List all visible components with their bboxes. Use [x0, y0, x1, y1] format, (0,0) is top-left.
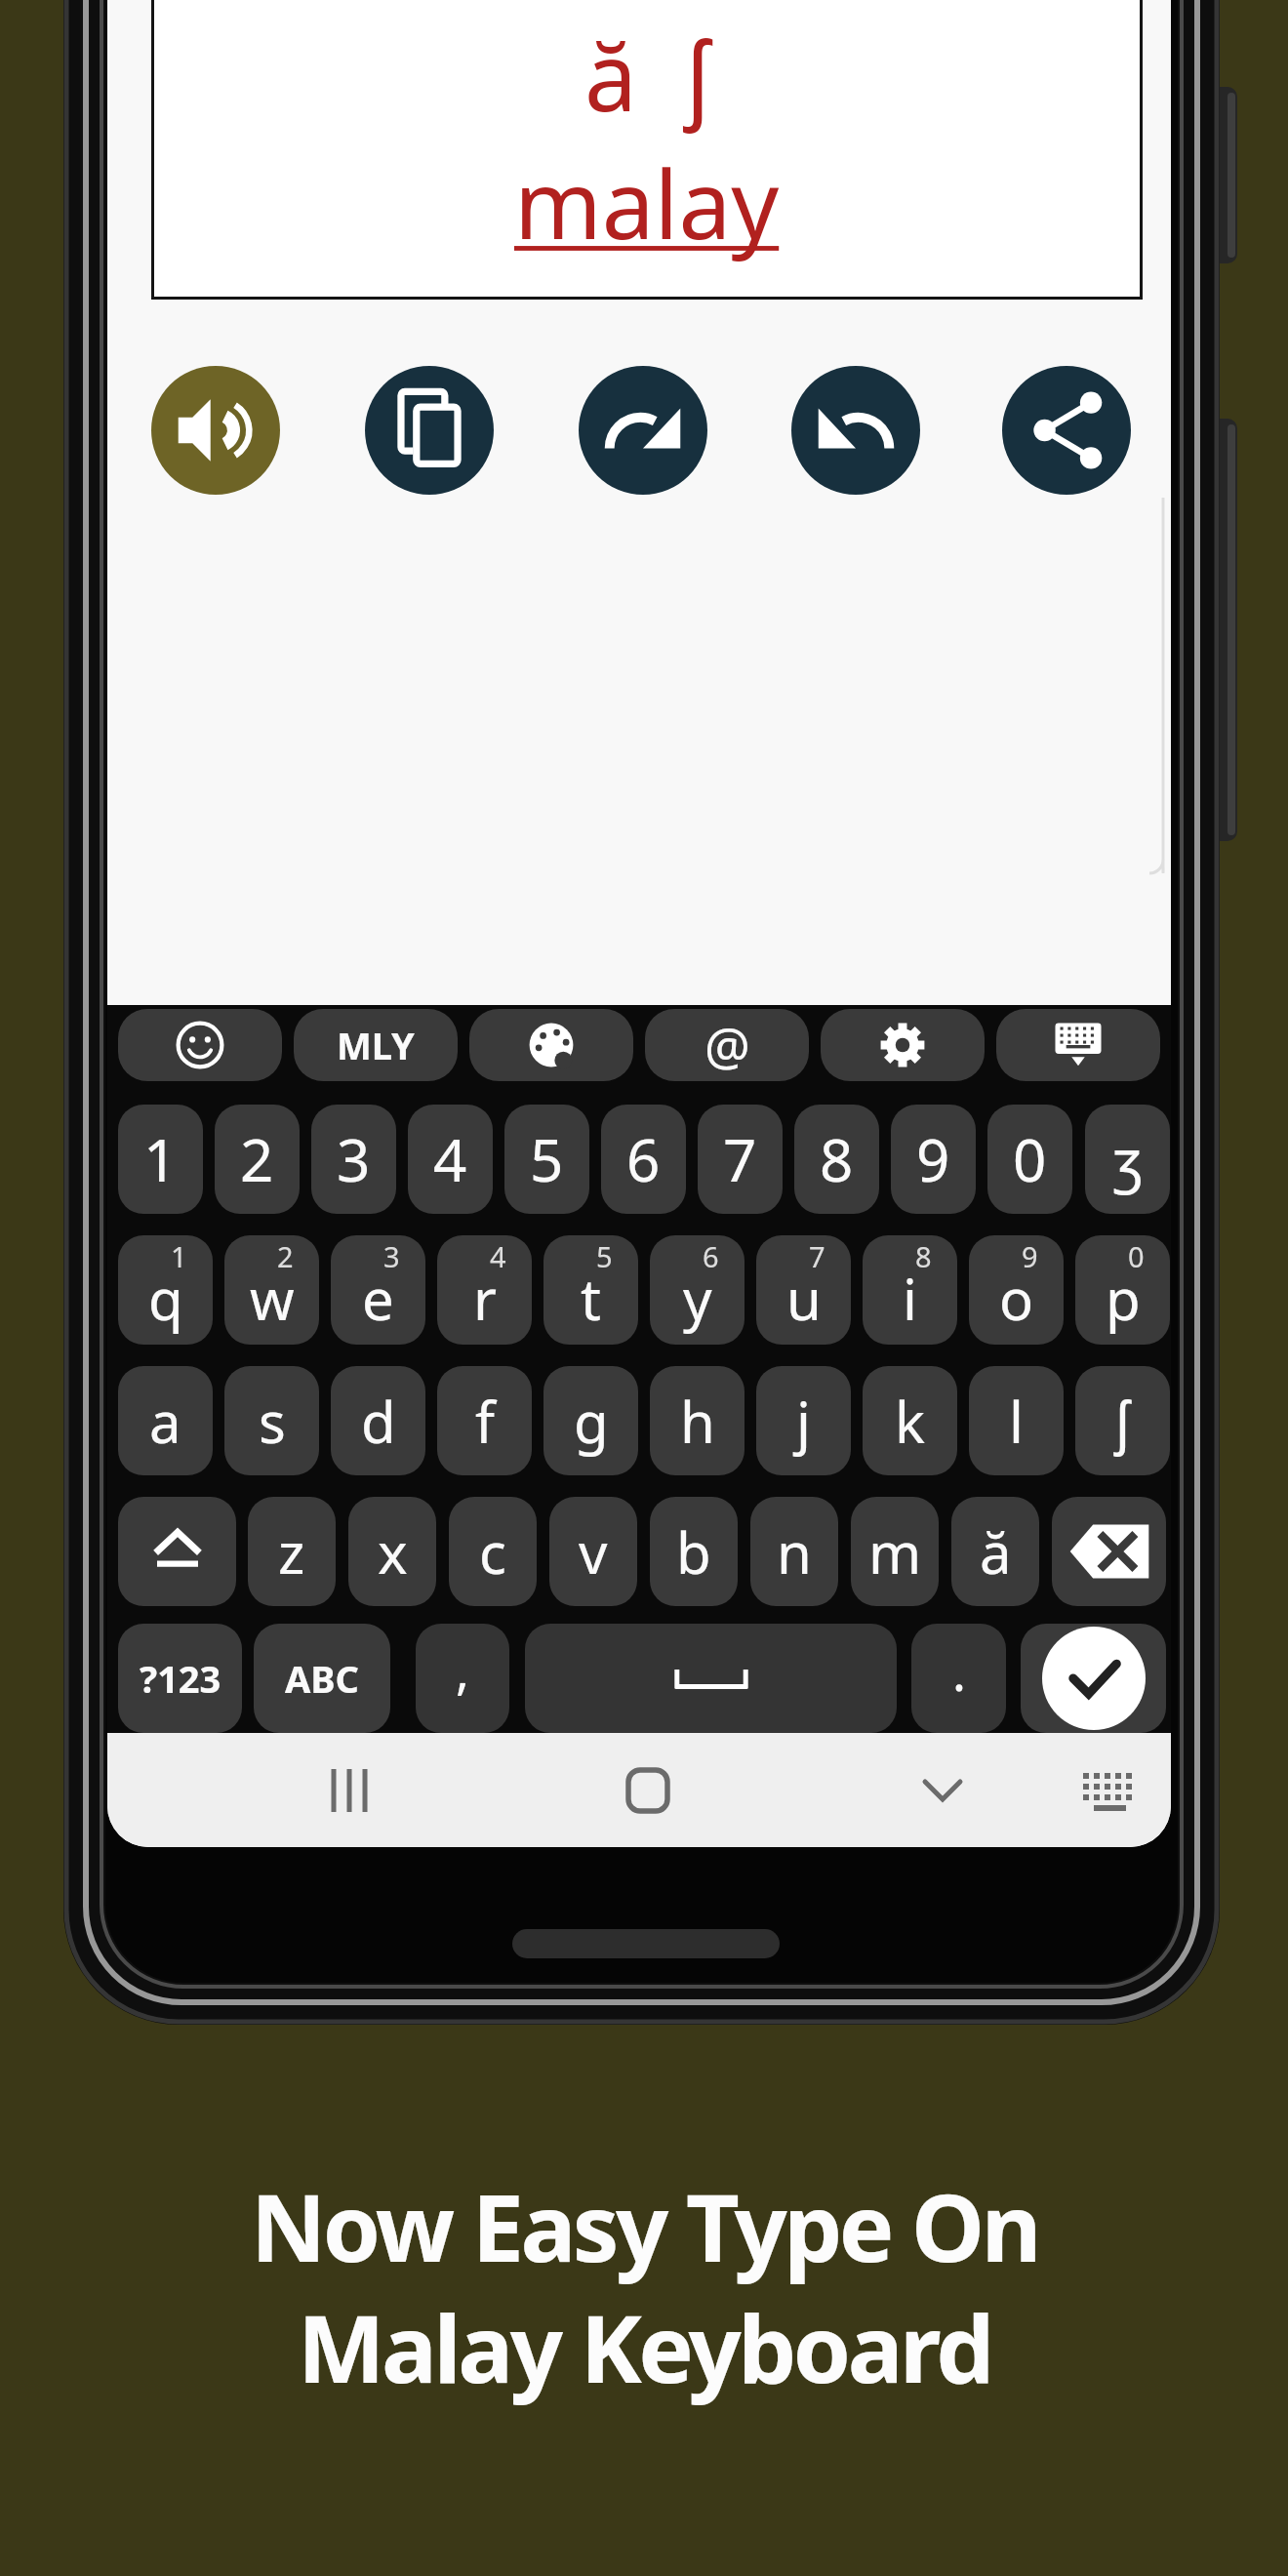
- button[interactable]: ʒ: [1085, 1105, 1170, 1214]
- staticText: 6: [626, 1119, 661, 1199]
- button[interactable]: [1021, 1624, 1166, 1733]
- button[interactable]: [821, 1009, 985, 1081]
- button[interactable]: x: [348, 1497, 436, 1606]
- button[interactable]: s: [224, 1366, 319, 1475]
- button[interactable]: 1: [118, 1235, 213, 1345]
- button[interactable]: 2: [224, 1235, 319, 1345]
- button[interactable]: [525, 1624, 897, 1733]
- staticText: 5: [596, 1237, 613, 1275]
- button[interactable]: 8: [863, 1235, 957, 1345]
- button[interactable]: @: [645, 1009, 809, 1081]
- button[interactable]: ă: [951, 1497, 1039, 1606]
- button[interactable]: [791, 366, 920, 495]
- staticText: MLY: [337, 1020, 415, 1070]
- button[interactable]: 6: [650, 1235, 745, 1345]
- staticText: ă: [980, 1513, 1012, 1590]
- staticText: 1: [171, 1237, 187, 1275]
- staticText: o: [999, 1260, 1034, 1337]
- button[interactable]: g: [543, 1366, 638, 1475]
- button[interactable]: [1046, 1733, 1163, 1847]
- staticText: k: [895, 1383, 925, 1460]
- button[interactable]: 3: [331, 1235, 425, 1345]
- button[interactable]: ,: [416, 1624, 509, 1733]
- staticText: t: [581, 1260, 601, 1337]
- button[interactable]: [291, 1733, 408, 1847]
- staticText: n: [777, 1513, 812, 1590]
- button[interactable]: h: [650, 1366, 745, 1475]
- staticText: x: [378, 1513, 408, 1590]
- staticText: 0: [1128, 1237, 1145, 1275]
- staticText: b: [676, 1513, 711, 1590]
- staticText: 2: [240, 1119, 274, 1199]
- staticText: 3: [337, 1119, 371, 1199]
- staticText: a: [149, 1383, 181, 1460]
- staticText: 4: [490, 1237, 506, 1275]
- staticText: .: [952, 1636, 966, 1706]
- button[interactable]: MLY: [294, 1009, 458, 1081]
- button[interactable]: [1052, 1497, 1166, 1606]
- button[interactable]: 4: [437, 1235, 532, 1345]
- button[interactable]: 9: [891, 1105, 976, 1214]
- staticText: z: [278, 1513, 305, 1590]
- staticText: e: [362, 1260, 394, 1337]
- button[interactable]: d: [331, 1366, 425, 1475]
- staticText: 6: [703, 1237, 719, 1275]
- button[interactable]: 6: [601, 1105, 686, 1214]
- staticText: ʃ: [1115, 1383, 1130, 1460]
- button[interactable]: ABC: [254, 1624, 390, 1733]
- button[interactable]: b: [650, 1497, 738, 1606]
- staticText: f: [475, 1383, 495, 1460]
- button[interactable]: ?123: [118, 1624, 242, 1733]
- staticText: 4: [433, 1119, 467, 1199]
- button[interactable]: 1: [118, 1105, 203, 1214]
- button[interactable]: 4: [408, 1105, 493, 1214]
- staticText: j: [796, 1383, 811, 1460]
- button[interactable]: [151, 366, 280, 495]
- staticText: w: [250, 1260, 295, 1337]
- button[interactable]: [118, 1497, 236, 1606]
- button[interactable]: [365, 366, 494, 495]
- button[interactable]: 0: [987, 1105, 1072, 1214]
- button[interactable]: 3: [311, 1105, 396, 1214]
- button[interactable]: l: [969, 1366, 1064, 1475]
- button[interactable]: [589, 1733, 706, 1847]
- button[interactable]: j: [756, 1366, 851, 1475]
- button[interactable]: 5: [504, 1105, 589, 1214]
- button[interactable]: .: [911, 1624, 1006, 1733]
- staticText: 8: [915, 1237, 932, 1275]
- button[interactable]: k: [863, 1366, 957, 1475]
- button[interactable]: 7: [756, 1235, 851, 1345]
- button[interactable]: [469, 1009, 633, 1081]
- staticText: y: [683, 1260, 712, 1337]
- button[interactable]: 0: [1075, 1235, 1170, 1345]
- button[interactable]: z: [248, 1497, 336, 1606]
- button[interactable]: [118, 1009, 282, 1081]
- staticText: s: [259, 1383, 286, 1460]
- staticText: c: [479, 1513, 506, 1590]
- staticText: ă ʃ: [584, 11, 710, 139]
- button[interactable]: v: [549, 1497, 637, 1606]
- staticText: 7: [809, 1237, 825, 1275]
- button[interactable]: 7: [698, 1105, 783, 1214]
- button[interactable]: m: [851, 1497, 939, 1606]
- button[interactable]: ʃ: [1075, 1366, 1170, 1475]
- staticText: 1: [143, 1119, 178, 1199]
- button[interactable]: f: [437, 1366, 532, 1475]
- button[interactable]: c: [449, 1497, 537, 1606]
- staticText: h: [680, 1383, 715, 1460]
- staticText: p: [1106, 1260, 1141, 1337]
- button[interactable]: [1002, 366, 1131, 495]
- staticText: Now Easy Type On: [251, 2162, 1038, 2288]
- button[interactable]: 2: [215, 1105, 300, 1214]
- button[interactable]: 9: [969, 1235, 1064, 1345]
- staticText: q: [148, 1260, 183, 1337]
- button[interactable]: [579, 366, 707, 495]
- button[interactable]: [996, 1009, 1160, 1081]
- button[interactable]: a: [118, 1366, 213, 1475]
- staticText: malay: [514, 139, 780, 266]
- button[interactable]: n: [750, 1497, 838, 1606]
- button[interactable]: 5: [543, 1235, 638, 1345]
- button[interactable]: [884, 1733, 1001, 1847]
- staticText: v: [579, 1513, 608, 1590]
- button[interactable]: 8: [794, 1105, 879, 1214]
